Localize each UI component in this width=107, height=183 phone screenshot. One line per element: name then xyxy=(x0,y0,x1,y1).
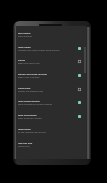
staticText: all the solutions will be lost xyxy=(18,131,46,134)
staticText: while navigating through puzzles xyxy=(18,103,52,106)
staticText: when a cell is broken xyxy=(18,76,40,79)
button[interactable]: hide solved puzzles xyxy=(74,97,84,107)
button[interactable]: sound xyxy=(74,56,84,66)
staticText: display the elapsed time xyxy=(18,90,43,93)
staticText: black & white xyxy=(18,35,32,38)
staticText: rate this app xyxy=(18,141,33,144)
staticText: sound xyxy=(18,58,26,61)
staticText: when you solve a cell xyxy=(18,62,40,65)
staticText: show timer xyxy=(18,86,31,89)
button[interactable]: relax mode xyxy=(74,43,84,53)
staticText: hide solved puzzles xyxy=(18,99,40,102)
staticText: what a puzzle is solved xyxy=(18,117,42,120)
staticText: grid theme xyxy=(18,31,31,34)
button[interactable]: vibrate and show red grid xyxy=(74,70,84,80)
button[interactable]: relax mode xyxy=(16,41,86,55)
button[interactable]: sound xyxy=(16,54,86,68)
staticText: goto next puzzle xyxy=(18,113,37,116)
button[interactable]: show timer xyxy=(16,82,86,96)
button[interactable]: show timer xyxy=(74,84,84,94)
button[interactable]: goto next puzzle xyxy=(16,109,86,123)
button[interactable]: rate this app xyxy=(16,137,86,151)
button[interactable]: reset game xyxy=(16,123,86,137)
button[interactable]: grid theme xyxy=(16,27,86,41)
staticText: numbers will return status while playing xyxy=(18,49,60,52)
button[interactable]: vibrate and show red grid xyxy=(16,68,86,82)
staticText: (thank you) xyxy=(18,145,30,148)
staticText: vibrate and show red grid xyxy=(18,72,47,75)
button[interactable]: goto next puzzle xyxy=(74,111,84,121)
staticText: relax mode xyxy=(18,45,31,48)
button[interactable]: hide solved puzzles xyxy=(16,95,86,109)
staticText: reset game xyxy=(18,127,31,130)
